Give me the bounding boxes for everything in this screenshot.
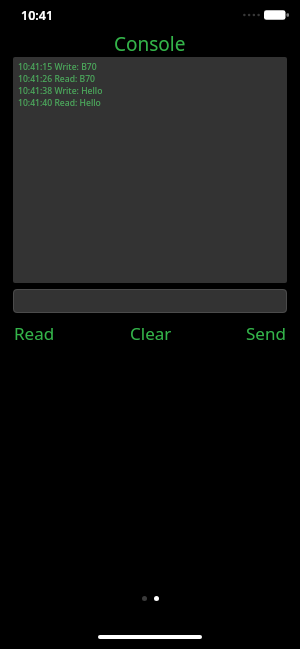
staticText: 10:41:15 Write: B70: [18, 61, 97, 73]
staticText: Send: [246, 322, 286, 345]
button[interactable]: Read: [12, 321, 57, 346]
button[interactable]: Clear: [128, 321, 174, 346]
staticText: 10:41: [21, 7, 54, 24]
staticText: 10:41:38 Write: Hello: [18, 85, 103, 97]
button[interactable]: Send: [244, 321, 288, 346]
button[interactable]: Message input: [13, 289, 287, 313]
staticText: 10:41:40 Read: Hello: [18, 97, 101, 109]
staticText: Console: [114, 31, 186, 57]
staticText: Clear: [130, 322, 172, 345]
staticText: Read: [14, 322, 55, 345]
staticText: 10:41:26 Read: B70: [18, 73, 96, 85]
